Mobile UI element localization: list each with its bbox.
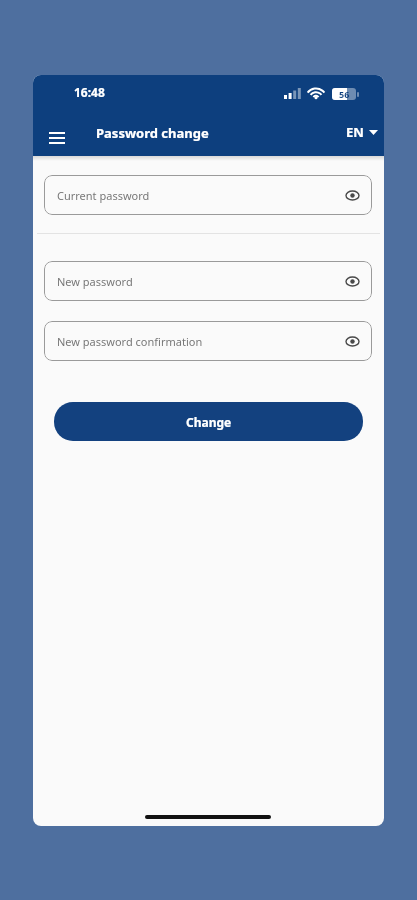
staticText: 16:48 (74, 84, 105, 100)
button[interactable]: EN (346, 119, 384, 145)
button[interactable] (39, 120, 75, 156)
button[interactable]: New password confirmation (44, 321, 372, 361)
staticText: Password change (96, 124, 209, 142)
staticText: New password confirmation (57, 334, 203, 349)
button[interactable] (340, 269, 364, 293)
button[interactable] (340, 183, 364, 207)
staticText: Change (186, 414, 232, 430)
button[interactable]: New password (44, 261, 372, 301)
staticText: Current password (57, 188, 150, 203)
button[interactable] (340, 329, 364, 353)
staticText: 56 (339, 88, 350, 100)
button[interactable]: Current password (44, 175, 372, 215)
button[interactable]: Change (54, 402, 363, 441)
staticText: EN (346, 123, 364, 141)
staticText: New password (57, 274, 133, 289)
